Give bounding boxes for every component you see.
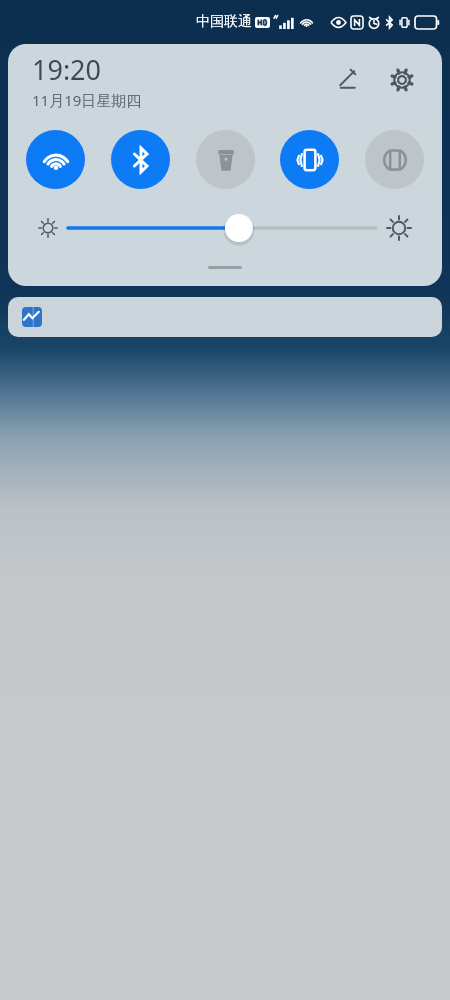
- button[interactable]: Flashlight: [196, 130, 255, 189]
- button[interactable]: Edit: [328, 60, 368, 100]
- staticText: 19:20: [32, 51, 102, 88]
- button[interactable]: Vibrate: [280, 130, 339, 189]
- button[interactable]: [8, 297, 442, 337]
- button[interactable]: Brightness: [58, 208, 386, 248]
- button[interactable]: Wi-Fi: [26, 130, 85, 189]
- button[interactable]: Bluetooth: [111, 130, 170, 189]
- button[interactable]: Ring mode: [365, 130, 424, 189]
- staticText: 11月19日星期四: [32, 90, 142, 110]
- button[interactable]: Settings: [382, 60, 422, 100]
- staticText: 中国联通: [196, 13, 252, 31]
